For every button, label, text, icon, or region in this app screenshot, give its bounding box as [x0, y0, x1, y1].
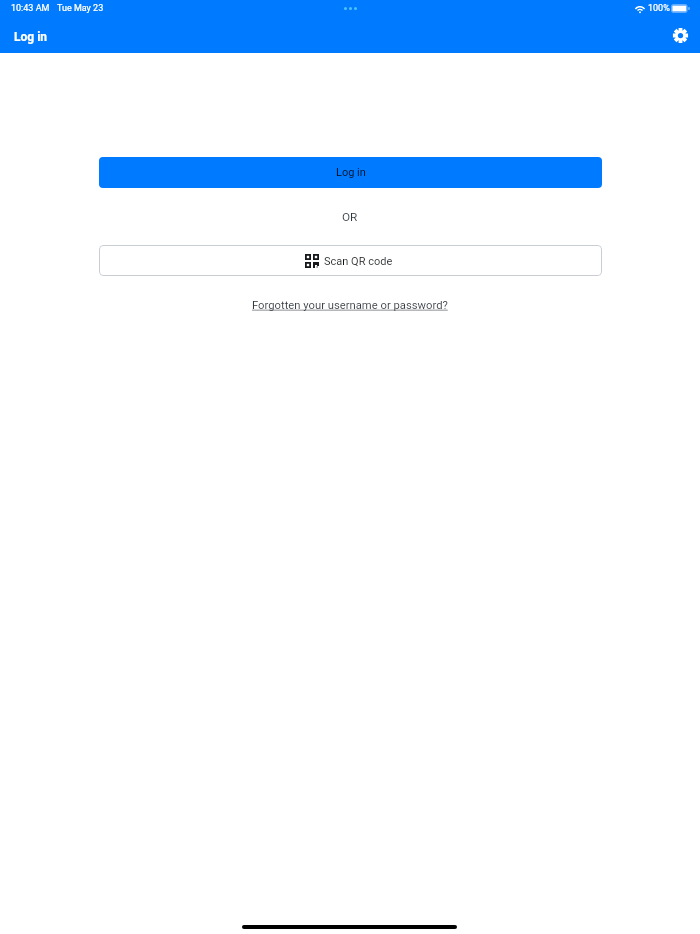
- staticText: Log in: [14, 30, 48, 44]
- staticText: 10:43 AM: [11, 3, 50, 14]
- staticText: Scan QR code: [324, 255, 393, 268]
- button[interactable]: Forgotten your username or password?: [252, 299, 448, 312]
- staticText: 100%: [648, 3, 670, 14]
- button[interactable]: Log in: [99, 157, 602, 188]
- staticText: OR: [342, 210, 358, 224]
- button[interactable]: Scan QR code: [99, 245, 602, 276]
- staticText: Tue May 23: [57, 3, 104, 14]
- button[interactable]: Settings: [666, 21, 694, 49]
- staticText: Log in: [336, 166, 366, 179]
